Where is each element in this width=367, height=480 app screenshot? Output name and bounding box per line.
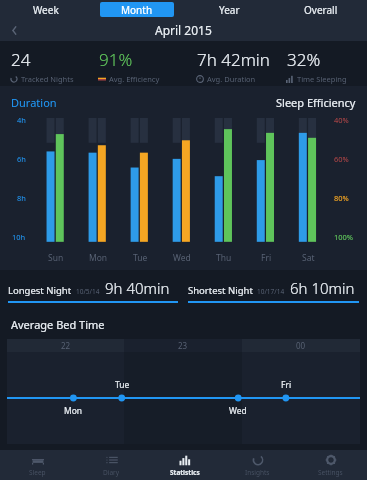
button[interactable]: 32% [286, 48, 356, 84]
staticText: 00 [296, 340, 306, 351]
staticText: Tue [115, 379, 130, 391]
staticText: Insights [245, 468, 270, 477]
staticText: Mon [64, 405, 83, 417]
staticText: 24 [11, 48, 31, 71]
staticText: Average Bed Time [11, 317, 105, 332]
button[interactable]: Month [100, 2, 174, 17]
staticText: Sun [48, 252, 64, 264]
staticText: Sleep Efficiency [276, 95, 356, 110]
staticText: 80% [334, 193, 349, 203]
button[interactable]: Overall [284, 2, 358, 17]
button[interactable]: Previous month [0, 19, 28, 41]
staticText: Year [219, 3, 240, 17]
button[interactable]: Diary [74, 450, 148, 480]
staticText: Sleep [29, 468, 46, 477]
staticText: 91% [99, 48, 133, 71]
staticText: 10/17/14 [257, 287, 285, 296]
staticText: 10/5/14 [76, 287, 100, 296]
staticText: 100% [334, 232, 354, 242]
button[interactable]: Longest Night [8, 278, 178, 303]
staticText: Overall [304, 3, 338, 17]
staticText: Week [33, 3, 59, 17]
button[interactable]: Year [192, 2, 266, 17]
staticText: Thu [216, 252, 232, 264]
staticText: 40% [334, 115, 349, 125]
staticText: Wed [173, 252, 191, 264]
staticText: 60% [334, 154, 349, 164]
staticText: Wed [229, 405, 247, 417]
staticText: Sat [302, 252, 315, 264]
staticText: Time Sleeping [297, 74, 347, 84]
staticText: 32% [287, 48, 321, 71]
staticText: Avg. Duration [207, 74, 256, 84]
button[interactable]: 91% [98, 48, 196, 84]
staticText: 23 [178, 340, 188, 351]
button[interactable]: Statistics [148, 450, 221, 480]
staticText: Tue [133, 252, 148, 264]
staticText: Statistics [170, 468, 200, 477]
staticText: 6h 10min [290, 278, 355, 298]
staticText: Avg. Efficiency [109, 74, 160, 84]
button[interactable]: Week [9, 2, 82, 17]
staticText: Month [121, 3, 153, 17]
button[interactable]: Shortest Night [188, 278, 359, 303]
staticText: Longest Night [8, 284, 72, 297]
staticText: April 2015 [155, 22, 212, 38]
staticText: Fri [261, 252, 272, 264]
button[interactable]: 7h 42min [196, 48, 286, 84]
staticText: Mon [89, 252, 108, 264]
staticText: Tracked Nights [21, 74, 74, 84]
staticText: Settings [318, 468, 343, 477]
staticText: 8h [17, 193, 26, 203]
staticText: Fri [281, 379, 292, 391]
staticText: 10h [12, 232, 26, 242]
button[interactable]: Insights [221, 450, 294, 480]
staticText: 22 [61, 340, 71, 351]
staticText: Diary [103, 468, 120, 477]
button[interactable]: 24 [10, 48, 98, 84]
staticText: 6h [17, 154, 26, 164]
staticText: 7h 42min [197, 48, 270, 71]
staticText: 4h [17, 115, 26, 125]
button[interactable]: Sleep [0, 450, 74, 480]
button[interactable]: Settings [294, 450, 367, 480]
staticText: Shortest Night [188, 284, 253, 297]
staticText: Duration [11, 95, 57, 110]
staticText: 9h 40min [105, 278, 170, 298]
